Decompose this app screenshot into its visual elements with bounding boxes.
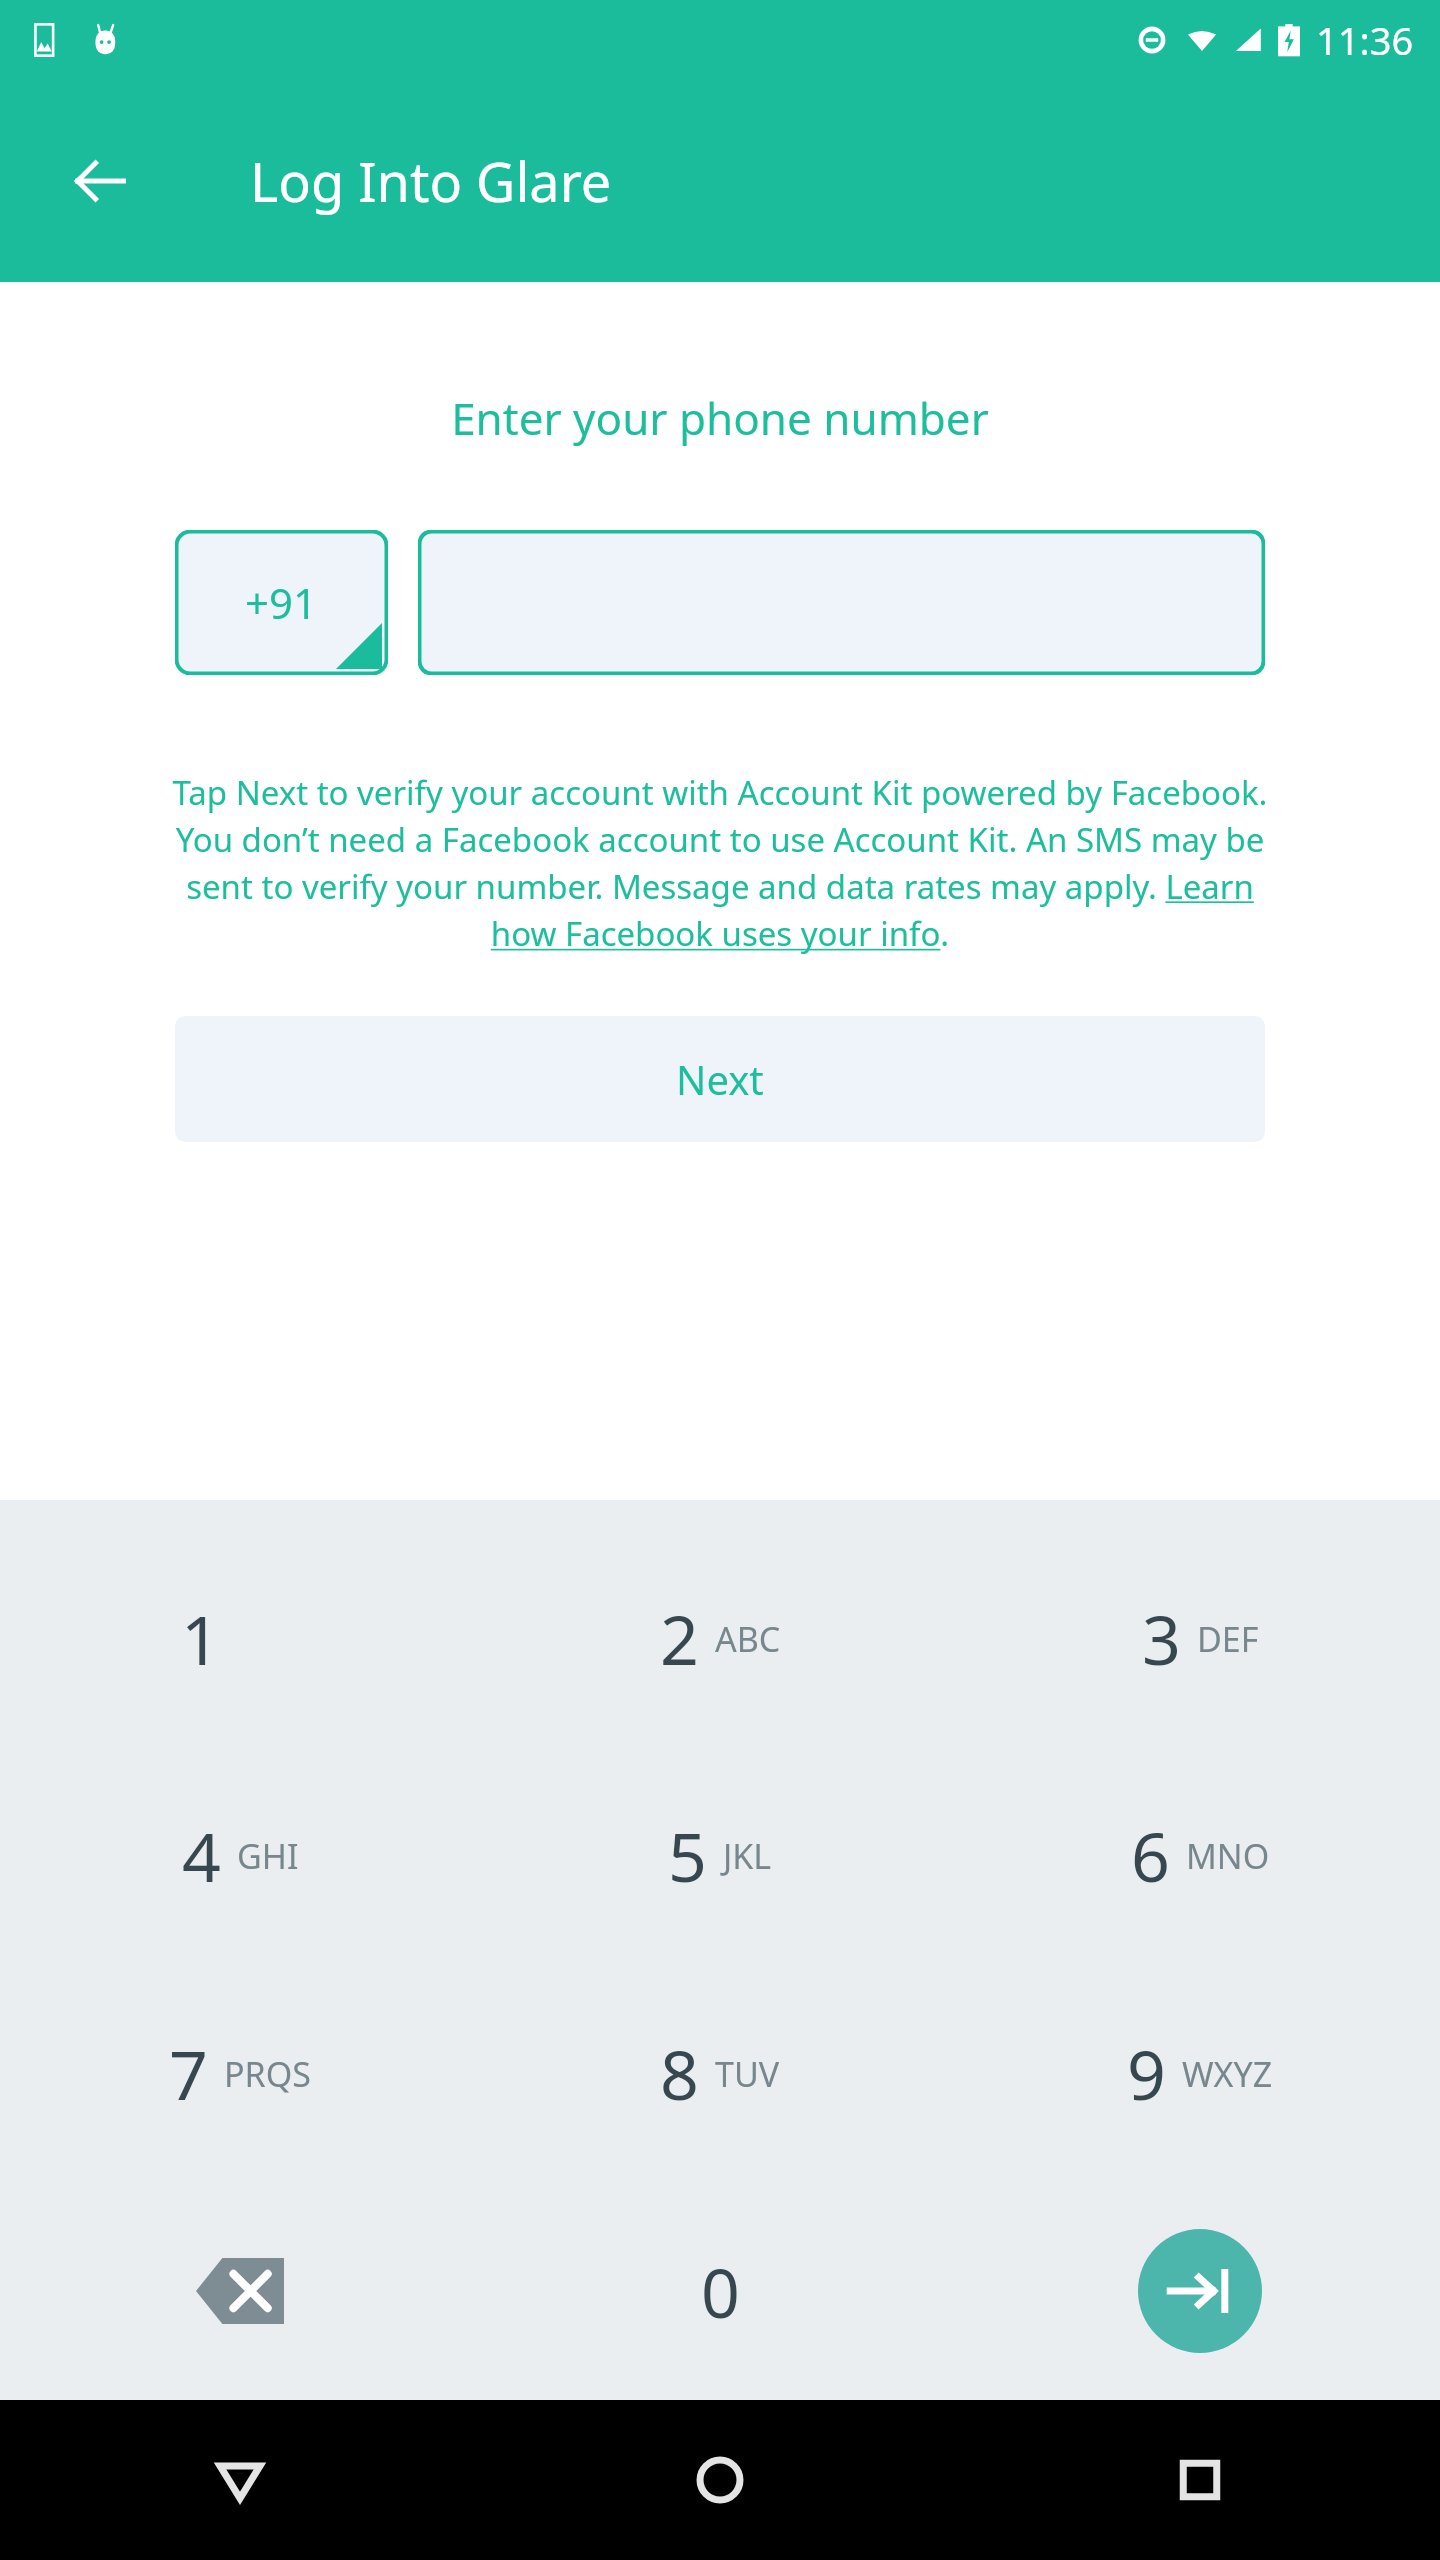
button[interactable]: 2 [480,1530,960,1747]
staticText: 0 [701,2245,740,2338]
staticText: WXYZ [1182,2051,1273,2097]
button[interactable]: Submit [960,2182,1440,2400]
button[interactable]: 4 [0,1747,480,1964]
button[interactable]: Home [480,2400,960,2560]
staticText: 4 [182,1809,221,1902]
button[interactable]: 8 [480,1964,960,2182]
staticText: DEF [1197,1616,1259,1662]
staticText: Next [676,1052,764,1106]
staticText: Log Into Glare [250,144,612,218]
button[interactable]: Next [175,1016,1265,1142]
staticText: 2 [660,1592,699,1685]
button[interactable]: 0 [480,2182,960,2400]
staticText: 3 [1142,1592,1181,1685]
button[interactable]: 7 [0,1964,480,2182]
button[interactable]: 3 [960,1530,1440,1747]
staticText: 9 [1127,2027,1166,2120]
staticText: PRQS [224,2051,311,2097]
staticText: 5 [668,1809,707,1902]
staticText: 7 [169,2027,208,2120]
staticText: Tap Next to verify your account with Acc… [172,770,1268,956]
button[interactable]: Back [0,2400,480,2560]
staticText: MNO [1186,1833,1270,1879]
staticText: +91 [245,574,318,631]
button[interactable]: Back [60,141,140,221]
button[interactable]: Backspace [0,2182,480,2400]
staticText: ABC [715,1616,781,1662]
button[interactable]: +91 [175,530,388,675]
button[interactable]: Recents [960,2400,1440,2560]
staticText: 11:36 [1316,14,1414,66]
button[interactable]: 6 [960,1747,1440,1964]
button[interactable] [418,530,1265,675]
staticText: GHI [237,1833,299,1879]
staticText: 6 [1131,1809,1170,1902]
staticText: JKL [723,1833,772,1879]
staticText: 8 [660,2027,699,2120]
staticText: 1 [181,1592,220,1685]
staticText: TUV [715,2051,780,2097]
button[interactable]: 1 [0,1530,480,1747]
staticText: Enter your phone number [451,388,989,448]
button[interactable]: 5 [480,1747,960,1964]
button[interactable]: 9 [960,1964,1440,2182]
